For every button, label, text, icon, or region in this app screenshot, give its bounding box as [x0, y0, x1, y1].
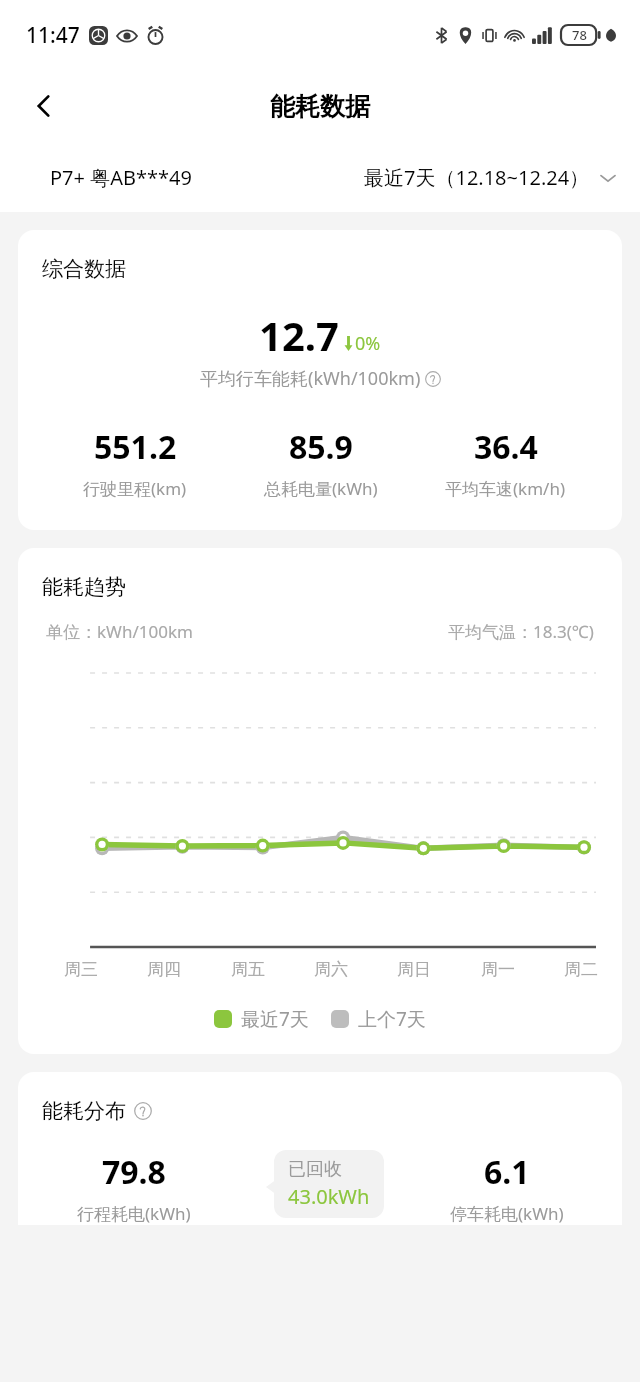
staticText: 平均行车能耗(kWh/100km): [200, 366, 421, 391]
staticText: 周六: [314, 959, 348, 980]
button[interactable]: 能耗趋势: [18, 548, 622, 1054]
button[interactable]: 综合数据: [18, 230, 622, 530]
staticText: 6.1: [484, 1150, 530, 1194]
button[interactable]: 能耗分布: [18, 1072, 622, 1225]
staticText: 上个7天: [358, 1006, 426, 1032]
staticText: 43.0kWh: [288, 1183, 370, 1210]
staticText: 周一: [481, 959, 515, 980]
staticText: 12.7: [259, 308, 339, 362]
staticText: 周五: [231, 959, 265, 980]
staticText: 周四: [147, 959, 181, 980]
staticText: 单位：kWh/100km: [46, 620, 193, 643]
staticText: 最近7天（12.18~12.24）: [364, 164, 590, 191]
staticText: 0%: [355, 331, 381, 356]
staticText: 最近7天: [241, 1006, 309, 1032]
staticText: 85.9: [289, 425, 353, 469]
staticText: 行程耗电(kWh): [77, 1202, 191, 1225]
staticText: 行驶里程(km): [83, 477, 187, 500]
staticText: P7+ 粤AB***49: [50, 164, 192, 191]
staticText: 79.8: [102, 1150, 166, 1194]
staticText: 551.2: [94, 425, 177, 469]
staticText: 36.4: [474, 425, 538, 469]
staticText: 78: [572, 26, 587, 44]
staticText: 平均气温：18.3(℃): [448, 620, 594, 643]
button[interactable]: 最近7天（12.18~12.24）: [364, 164, 640, 191]
staticText: 能耗数据: [270, 91, 370, 122]
staticText: 已回收: [288, 1158, 342, 1181]
staticText: 停车耗电(kWh): [450, 1202, 564, 1225]
button[interactable]: Back: [18, 80, 70, 132]
staticText: 能耗分布: [42, 1098, 126, 1124]
staticText: 周日: [397, 959, 431, 980]
staticText: 周三: [64, 959, 98, 980]
staticText: 周二: [564, 959, 598, 980]
staticText: 综合数据: [42, 256, 126, 282]
staticText: 11:47: [26, 21, 80, 50]
staticText: 能耗趋势: [42, 574, 126, 600]
staticText: 总耗电量(kWh): [264, 477, 378, 500]
staticText: 平均车速(km/h): [445, 477, 566, 500]
